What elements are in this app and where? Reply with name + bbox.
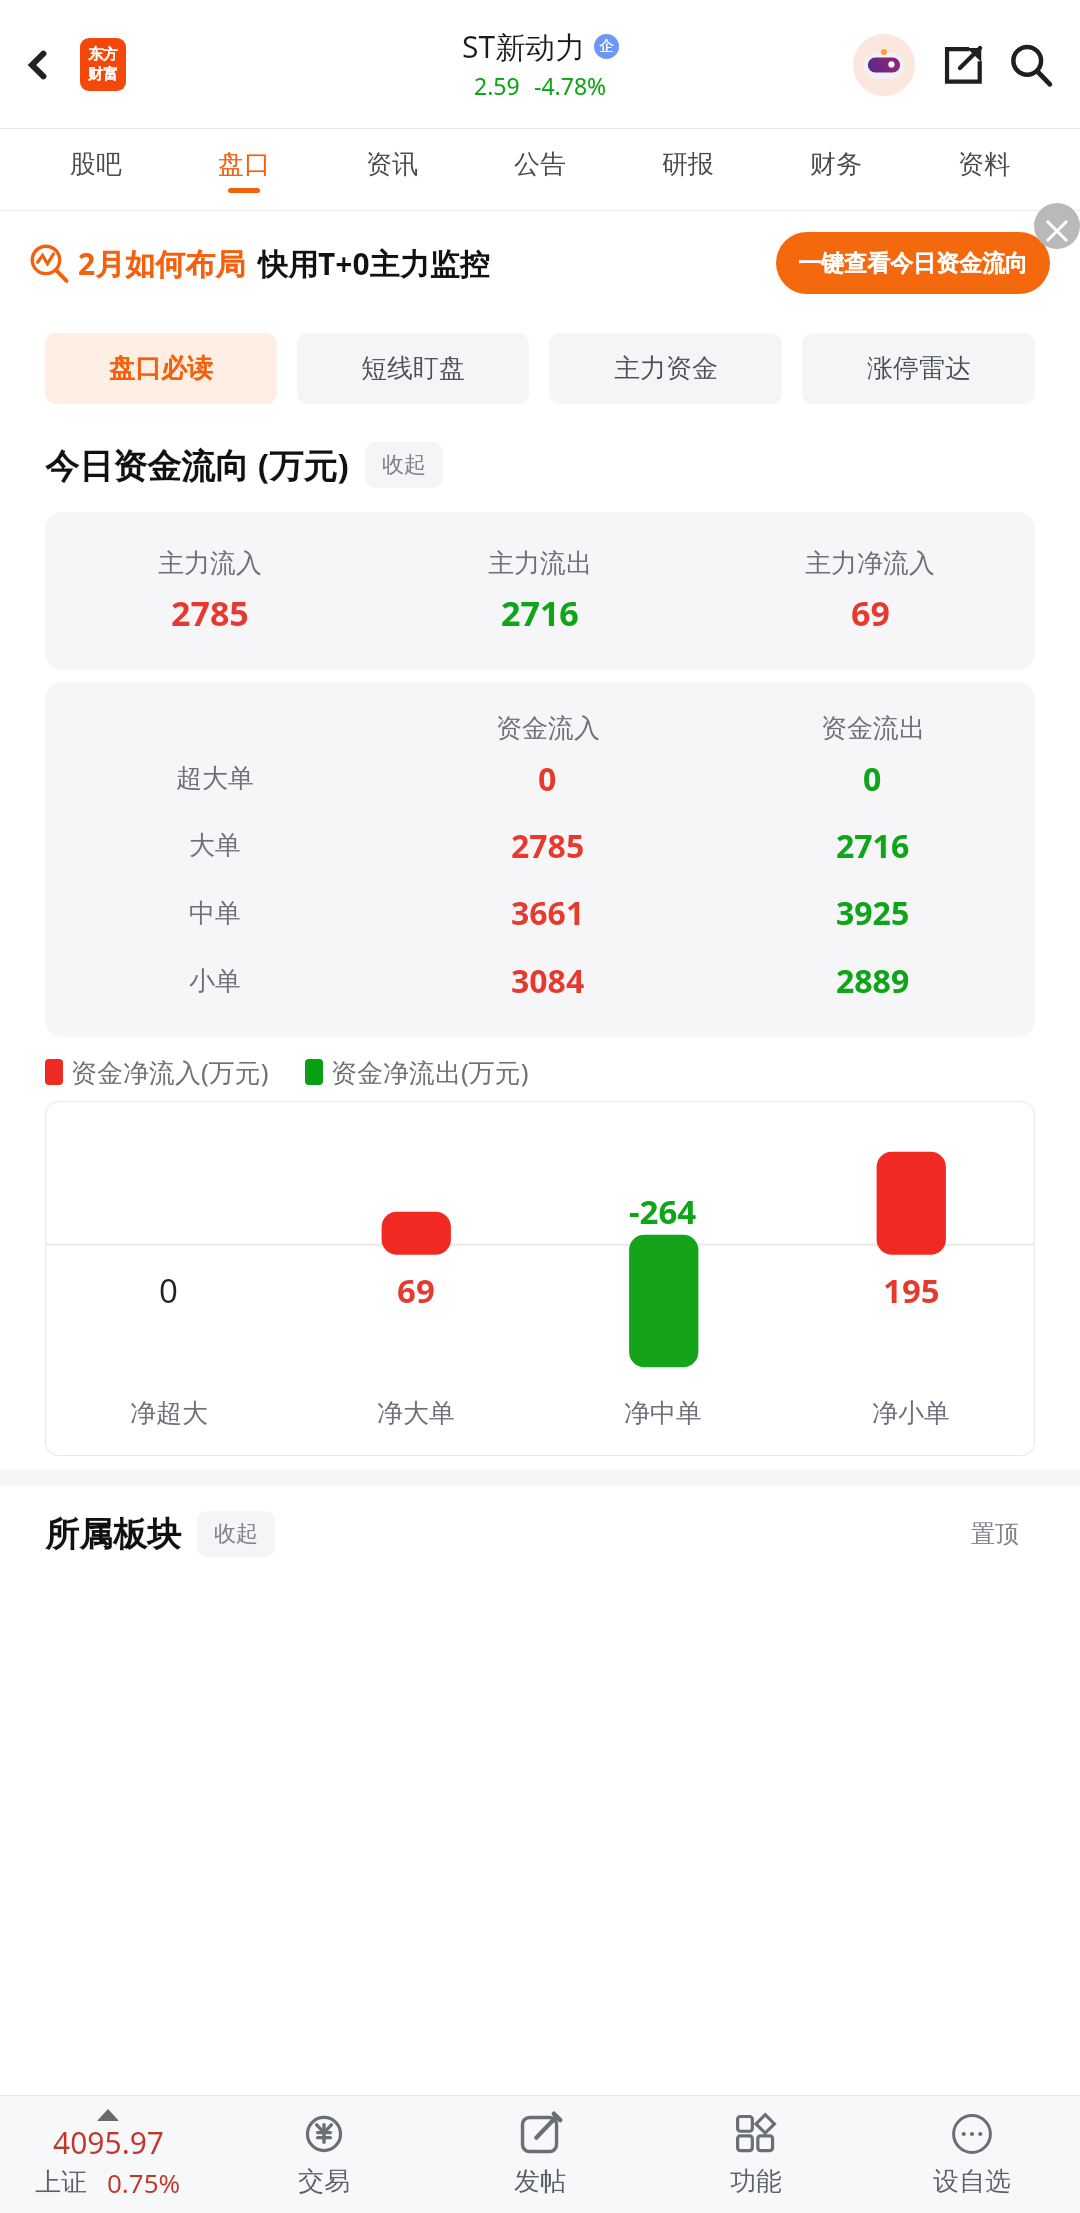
button[interactable]: 盘口 (170, 129, 318, 211)
staticText: 收起 (214, 1520, 258, 1548)
staticText: 交易 (298, 2165, 350, 2198)
staticText: 净小单 (872, 1397, 950, 1430)
staticText: 小单 (189, 965, 241, 998)
button[interactable]: 股吧 (22, 129, 170, 211)
staticText: 研报 (662, 148, 714, 181)
staticText: 净大单 (377, 1397, 455, 1430)
staticText: 功能 (730, 2165, 782, 2198)
button[interactable]: 资金流入 (45, 682, 1035, 1037)
staticText: 超大单 (176, 762, 254, 795)
staticText: 0.75% (107, 2165, 181, 2200)
button[interactable]: 盘口必读 (45, 333, 277, 404)
staticText: 0 (863, 757, 882, 801)
staticText: 净中单 (624, 1397, 702, 1430)
staticText: 涨停雷达 (867, 352, 971, 385)
staticText: 财务 (810, 148, 862, 181)
button[interactable]: 交易 (216, 2095, 432, 2213)
staticText: 主力净流入 (805, 547, 935, 580)
staticText: 195 (883, 1268, 940, 1313)
staticText: 2785 (511, 824, 585, 868)
staticText: 0 (159, 1268, 178, 1313)
staticText: 3084 (511, 959, 585, 1003)
button[interactable]: Search (1000, 34, 1062, 96)
staticText: 资料 (958, 148, 1010, 181)
button[interactable]: 发帖 (432, 2095, 648, 2213)
button[interactable]: 财务 (762, 129, 910, 211)
button[interactable]: 短线盯盘 (297, 333, 529, 404)
button[interactable]: 涨停雷达 (802, 333, 1035, 404)
staticText: 2.59 (474, 70, 520, 101)
staticText: 资金流出 (821, 712, 925, 745)
button[interactable]: 一键查看今日资金流向 (798, 232, 1028, 294)
staticText: 主力资金 (614, 352, 718, 385)
staticText: 置顶 (971, 1519, 1019, 1549)
staticText: 短线盯盘 (361, 352, 465, 385)
staticText: 盘口 (218, 148, 270, 181)
button[interactable]: 主力流入 (45, 512, 1035, 670)
staticText: 2月如何布局 (78, 243, 246, 284)
staticText: 收起 (382, 451, 426, 479)
staticText: 资金流入 (496, 712, 600, 745)
staticText: -4.78% (534, 70, 607, 101)
button[interactable]: Close ad (1034, 203, 1080, 249)
staticText: 资金净流入(万元) (71, 1054, 269, 1090)
staticText: 公告 (514, 148, 566, 181)
staticText: 资讯 (366, 148, 418, 181)
staticText: 发帖 (514, 2165, 566, 2198)
staticText: 2785 (171, 590, 249, 636)
staticText: 所属板块 (45, 1513, 181, 1556)
button[interactable]: AI assistant (850, 31, 918, 99)
staticText: 3661 (511, 891, 585, 935)
staticText: 盘口必读 (109, 352, 213, 385)
button[interactable]: 资讯 (318, 129, 466, 211)
staticText: -264 (629, 1189, 697, 1234)
staticText: 中单 (189, 897, 241, 930)
staticText: 上证 (35, 2166, 87, 2199)
staticText: 0 (538, 757, 557, 801)
staticText: 2889 (836, 959, 910, 1003)
button[interactable]: Back (6, 33, 70, 97)
button[interactable]: 置顶 (971, 1508, 1019, 1560)
staticText: 企 (599, 37, 614, 56)
staticText: 2716 (501, 590, 579, 636)
staticText: 设自选 (933, 2165, 1011, 2198)
button[interactable]: 收起 (214, 1511, 258, 1557)
staticText: 4095.97 (53, 2122, 164, 2163)
staticText: 一键查看今日资金流向 (798, 249, 1028, 278)
staticText: 股吧 (70, 148, 122, 181)
button[interactable]: 4095.97 (0, 2095, 216, 2213)
button[interactable]: Share (932, 34, 994, 96)
staticText: 东方 (88, 45, 118, 64)
staticText: 2716 (836, 824, 910, 868)
staticText: 69 (397, 1268, 435, 1313)
button[interactable]: East Money (80, 38, 126, 91)
staticText: 财富 (88, 65, 118, 84)
button[interactable]: 收起 (382, 442, 426, 488)
staticText: 大单 (189, 829, 241, 862)
button[interactable]: 功能 (648, 2095, 864, 2213)
button[interactable]: 公告 (466, 129, 614, 211)
button[interactable]: 设自选 (864, 2095, 1080, 2213)
staticText: 主力流入 (158, 547, 262, 580)
button[interactable]: 资料 (910, 129, 1058, 211)
staticText: 主力流出 (488, 547, 592, 580)
button[interactable]: -264 (45, 1101, 1035, 1456)
staticText: 今日资金流向 (万元) (45, 442, 349, 488)
staticText: 资金净流出(万元) (331, 1054, 529, 1090)
staticText: 69 (851, 590, 890, 636)
staticText: 净超大 (130, 1397, 208, 1430)
button[interactable]: 主力资金 (549, 333, 782, 404)
staticText: ST新动力 (462, 26, 586, 67)
staticText: 快用T+0主力监控 (258, 243, 490, 284)
button[interactable]: 研报 (614, 129, 762, 211)
staticText: 3925 (836, 891, 910, 935)
